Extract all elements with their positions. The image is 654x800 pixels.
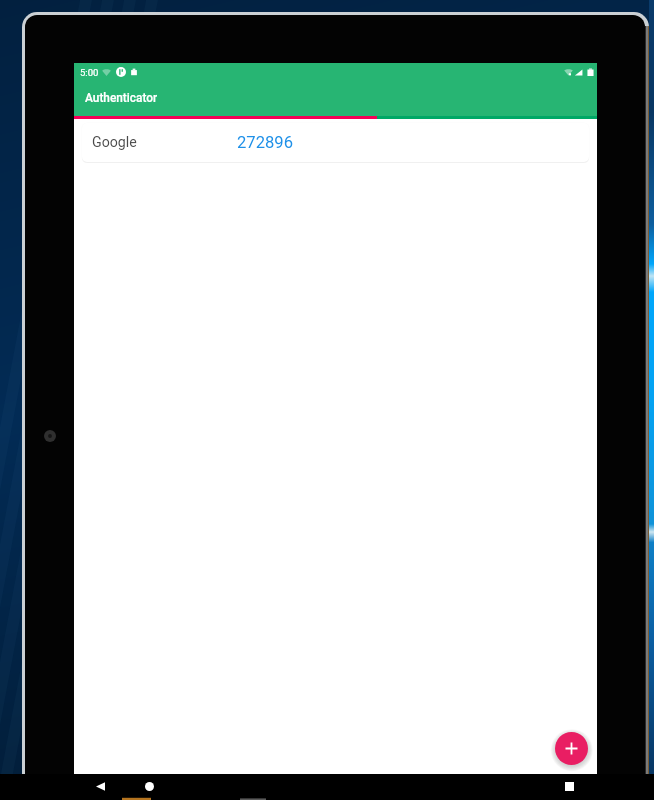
staticText: Authenticator [85, 91, 158, 105]
button[interactable]: Recents [561, 778, 577, 794]
button[interactable]: Google [82, 123, 589, 162]
staticText: 272896 [237, 133, 293, 152]
staticText: Google [92, 134, 237, 151]
button[interactable]: Home [141, 778, 157, 794]
button[interactable]: Add account [555, 732, 588, 765]
button[interactable]: Back [92, 778, 108, 794]
staticText: 5:00 [80, 67, 99, 78]
